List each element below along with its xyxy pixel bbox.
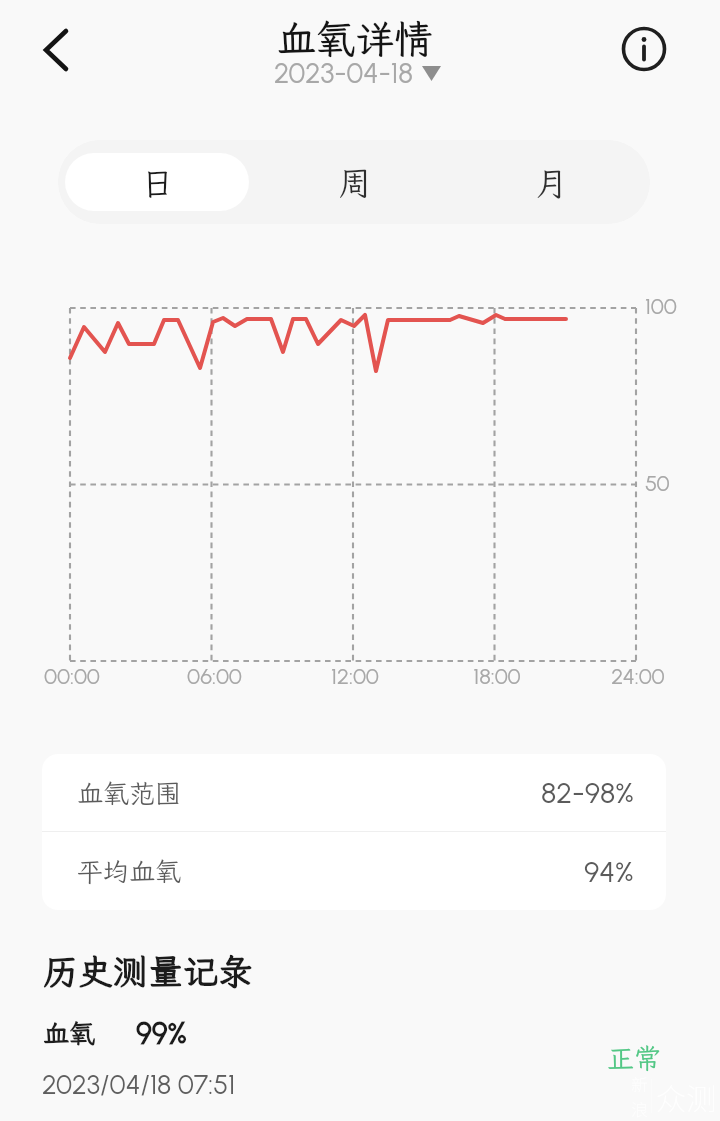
button[interactable]: 血氧范围 — [42, 754, 666, 831]
staticText: 日 — [141, 161, 174, 204]
staticText: 100 — [645, 293, 677, 319]
staticText: 血氧 — [43, 1016, 96, 1050]
staticText: 历史测量记录 — [43, 948, 254, 994]
staticText: 06:00 — [187, 663, 242, 689]
staticText: 50 — [645, 470, 670, 496]
button[interactable]: Back — [22, 16, 86, 80]
button[interactable]: 月 — [453, 153, 650, 211]
staticText: 月 — [535, 161, 568, 204]
button[interactable]: 2023-04-18 — [270, 54, 445, 92]
staticText: 18:00 — [473, 663, 521, 689]
staticText: 82-98% — [541, 775, 634, 810]
staticText: 周 — [338, 161, 371, 204]
staticText: 94% — [584, 854, 634, 889]
staticText: 血氧范围 — [77, 776, 182, 810]
button[interactable]: 日 — [65, 153, 249, 211]
staticText: 2023/04/18 07:51 — [42, 1068, 236, 1100]
staticText: 12:00 — [331, 663, 379, 689]
staticText: 24:00 — [611, 663, 665, 689]
staticText: 2023-04-18 — [274, 56, 413, 90]
button[interactable]: 周 — [256, 153, 453, 211]
staticText: 血氧详情 — [277, 13, 434, 64]
staticText: 正常 — [607, 1040, 661, 1076]
staticText: 00:00 — [44, 663, 100, 689]
button[interactable]: Info — [614, 19, 674, 79]
staticText: 99% — [136, 1015, 187, 1051]
button[interactable]: 平均血氧 — [42, 832, 666, 910]
staticText: 平均血氧 — [77, 854, 182, 888]
